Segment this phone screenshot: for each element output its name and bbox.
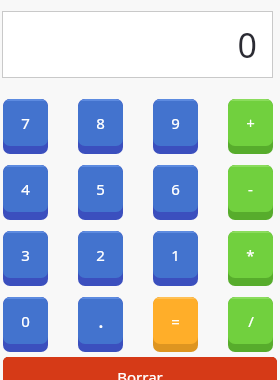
- button[interactable]: *: [228, 231, 273, 286]
- staticText: 0: [21, 311, 30, 331]
- staticText: /: [248, 311, 254, 331]
- button[interactable]: 1: [153, 231, 198, 286]
- button[interactable]: 0: [3, 297, 48, 352]
- button[interactable]: 4: [3, 165, 48, 220]
- staticText: 5: [96, 179, 105, 199]
- button[interactable]: 9: [153, 99, 198, 154]
- staticText: =: [171, 311, 180, 331]
- staticText: Borrar: [117, 367, 163, 380]
- button[interactable]: 6: [153, 165, 198, 220]
- staticText: +: [246, 113, 255, 133]
- staticText: 2: [96, 245, 105, 265]
- staticText: 0: [237, 22, 257, 68]
- staticText: 4: [21, 179, 30, 199]
- button[interactable]: 0: [2, 11, 273, 78]
- button[interactable]: /: [228, 297, 273, 352]
- staticText: 6: [171, 179, 180, 199]
- staticText: 9: [171, 113, 180, 133]
- button[interactable]: 2: [78, 231, 123, 286]
- staticText: .: [98, 307, 104, 334]
- button[interactable]: +: [228, 99, 273, 154]
- staticText: *: [246, 245, 255, 265]
- button[interactable]: Borrar: [3, 357, 277, 380]
- button[interactable]: 3: [3, 231, 48, 286]
- staticText: 3: [21, 245, 30, 265]
- button[interactable]: 8: [78, 99, 123, 154]
- staticText: 1: [171, 245, 180, 265]
- button[interactable]: 5: [78, 165, 123, 220]
- staticText: 8: [96, 113, 105, 133]
- button[interactable]: =: [153, 297, 198, 352]
- staticText: -: [248, 179, 253, 199]
- staticText: 7: [21, 113, 30, 133]
- button[interactable]: 7: [3, 99, 48, 154]
- button[interactable]: -: [228, 165, 273, 220]
- button[interactable]: .: [78, 297, 123, 352]
